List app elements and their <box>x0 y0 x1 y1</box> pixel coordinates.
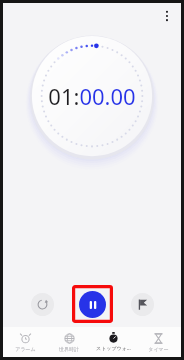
button[interactable]: 世界時計 <box>47 327 91 357</box>
button[interactable]: More options <box>156 5 178 27</box>
staticText: 世界時計 <box>59 346 79 352</box>
staticText: アラーム <box>15 346 36 352</box>
staticText: ストップウォ… <box>96 345 131 352</box>
staticText: 01:00.00 <box>48 81 136 111</box>
button[interactable]: タイマー <box>136 327 181 357</box>
button[interactable]: Pause <box>79 291 106 318</box>
staticText: タイマー <box>148 346 169 352</box>
button[interactable]: Reset <box>31 293 54 316</box>
button[interactable]: ストップウォ… <box>91 327 136 357</box>
button[interactable]: Lap <box>131 293 154 316</box>
button[interactable]: アラーム <box>3 327 47 357</box>
